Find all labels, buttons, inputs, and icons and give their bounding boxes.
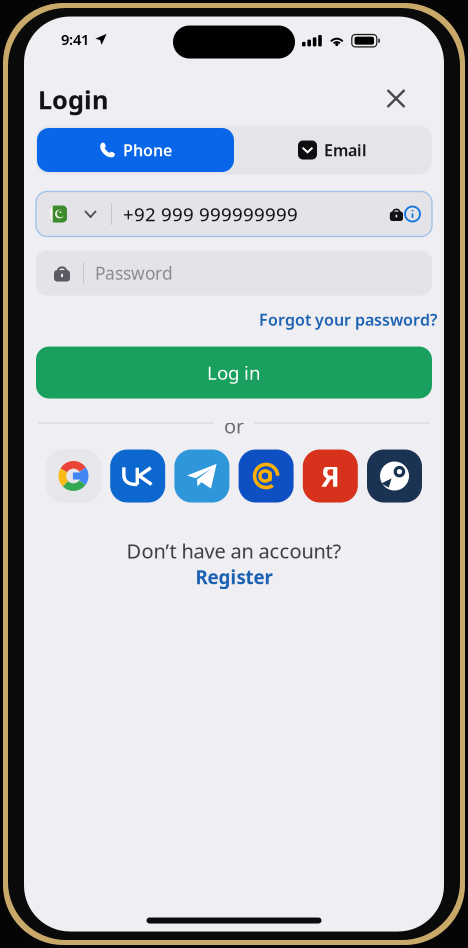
staticText: Forgot your password?	[259, 309, 437, 330]
button[interactable]: +92 999 999999999	[36, 191, 432, 236]
staticText: or	[224, 412, 244, 439]
button[interactable]: Log in	[36, 346, 432, 398]
button[interactable]: Sign in with Steam	[367, 449, 422, 502]
staticText: Login	[38, 82, 108, 116]
button[interactable]: Forgot your password?	[259, 308, 437, 330]
staticText: Я	[321, 457, 340, 495]
button[interactable]: Register	[24, 564, 444, 589]
button[interactable]: Sign in with Mail.ru	[239, 449, 294, 502]
button[interactable]: Email	[234, 128, 431, 172]
staticText: +92 999 999999999	[123, 202, 298, 226]
staticText: Email	[324, 139, 367, 161]
staticText: Register	[195, 564, 272, 589]
staticText: 9:41	[61, 29, 89, 49]
staticText: Log in	[207, 360, 261, 385]
button[interactable]: Close	[376, 78, 416, 118]
button[interactable]: Password	[36, 250, 432, 295]
button[interactable]: Sign in with Google	[46, 449, 101, 502]
button[interactable]: Sign in with Telegram	[174, 449, 229, 502]
staticText: Don’t have an account?	[126, 537, 341, 564]
staticText: Phone	[123, 139, 172, 161]
button[interactable]: Phone	[37, 128, 234, 172]
staticText: Password	[95, 261, 173, 284]
button[interactable]: Sign in with VK	[110, 449, 165, 502]
button[interactable]: Sign in with Yandex	[303, 449, 358, 502]
